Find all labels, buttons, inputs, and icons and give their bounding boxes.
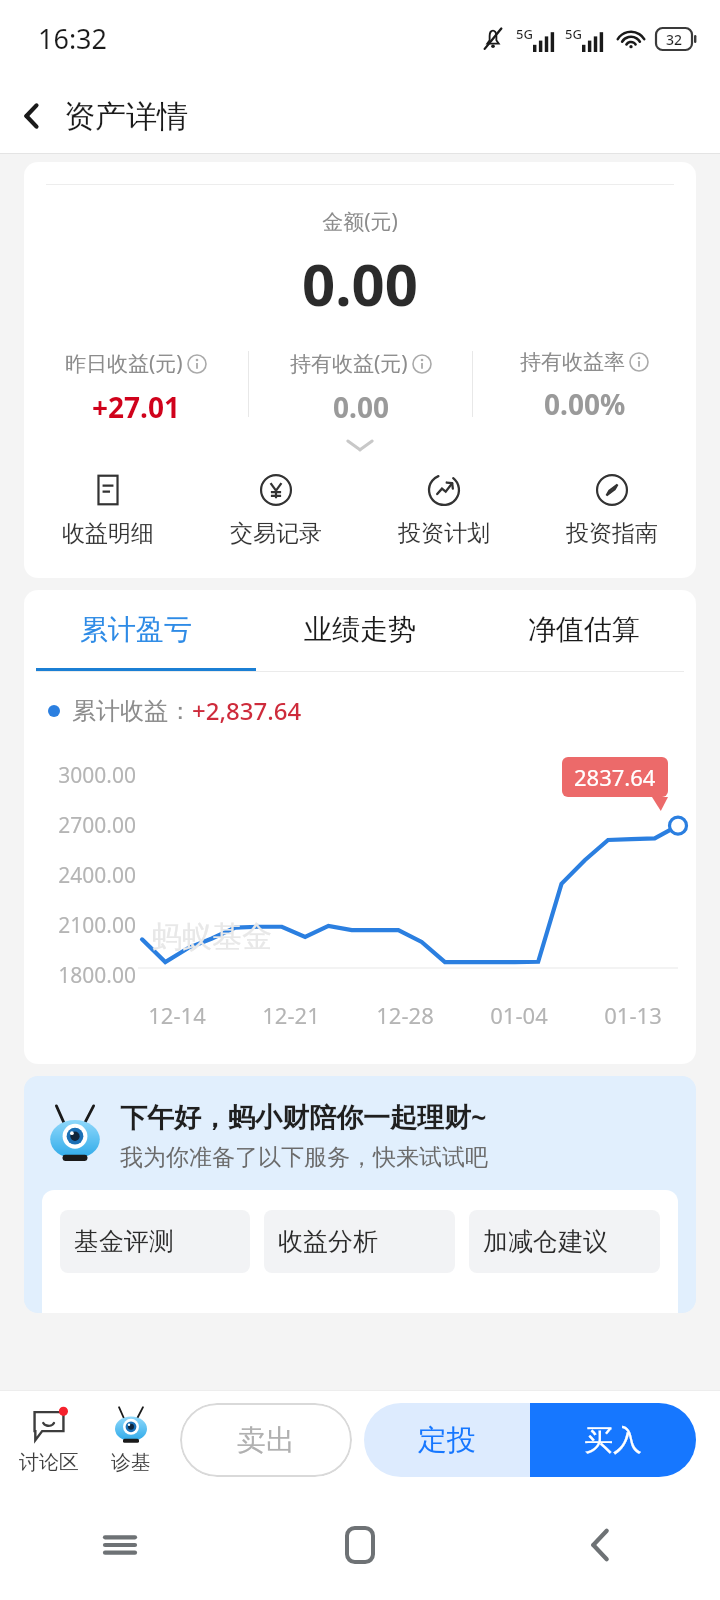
staticText: 蚂蚁基金: [152, 918, 272, 956]
staticText: 基金评测: [74, 1226, 174, 1257]
staticText: 5G: [565, 25, 582, 43]
staticText: 资产详情: [64, 97, 188, 136]
button[interactable]: 基金评测: [60, 1210, 250, 1273]
staticText: 投资指南: [566, 519, 658, 548]
staticText: 3000.00: [24, 761, 136, 790]
staticText: 16:32: [38, 20, 108, 57]
button[interactable]: Back: [480, 1490, 720, 1600]
staticText: 持有收益率: [520, 349, 625, 375]
button[interactable]: 收益明细: [24, 469, 192, 552]
button[interactable]: 净值估算: [472, 590, 696, 668]
staticText: 净值估算: [528, 612, 640, 647]
staticText: 诊基: [111, 1450, 151, 1475]
staticText: 1800.00: [24, 961, 136, 990]
staticText: 收益分析: [278, 1226, 378, 1257]
button[interactable]: Recents: [0, 1490, 240, 1600]
staticText: 我为你准备了以下服务，快来试试吧: [120, 1143, 488, 1172]
staticText: 2400.00: [24, 861, 136, 890]
button[interactable]: Expand: [24, 431, 696, 459]
staticText: 下午好，蚂小财陪你一起理财~: [120, 1098, 487, 1135]
staticText: 讨论区: [19, 1450, 79, 1475]
staticText: 持有收益(元): [290, 349, 408, 378]
staticText: 12-28: [348, 1000, 462, 1030]
staticText: 0.00: [24, 244, 696, 323]
button[interactable]: 加减仓建议: [469, 1210, 660, 1273]
button[interactable]: Back: [0, 84, 64, 148]
staticText: 2837.64: [574, 762, 656, 792]
staticText: +27.01: [92, 388, 180, 419]
button[interactable]: Home: [240, 1490, 480, 1600]
staticText: 累计盈亏: [80, 612, 192, 647]
button[interactable]: 诊基: [90, 1406, 172, 1475]
button[interactable]: 卖出: [180, 1403, 352, 1477]
staticText: 卖出: [237, 1422, 295, 1459]
staticText: 2700.00: [24, 811, 136, 840]
staticText: 2100.00: [24, 911, 136, 940]
staticText: 12-14: [120, 1000, 234, 1030]
button[interactable]: 投资指南: [528, 469, 696, 552]
button[interactable]: 定投: [364, 1403, 530, 1477]
button[interactable]: 业绩走势: [248, 590, 472, 668]
staticText: 定投: [418, 1422, 476, 1459]
button[interactable]: 持有收益(元): [249, 349, 472, 419]
staticText: 32: [666, 30, 683, 49]
button[interactable]: 累计盈亏: [24, 590, 248, 668]
button[interactable]: 昨日收益(元): [24, 349, 248, 419]
staticText: 业绩走势: [304, 612, 416, 647]
staticText: 投资计划: [398, 519, 490, 548]
staticText: 昨日收益(元): [65, 349, 183, 378]
staticText: 累计收益：: [72, 696, 192, 726]
staticText: +2,837.64: [192, 694, 302, 727]
staticText: 0.00: [333, 388, 389, 419]
staticText: 12-21: [234, 1000, 348, 1030]
button[interactable]: 持有收益率: [473, 349, 696, 419]
staticText: 交易记录: [230, 519, 322, 548]
staticText: 买入: [584, 1422, 642, 1459]
staticText: 加减仓建议: [483, 1226, 608, 1257]
button[interactable]: 交易记录: [192, 469, 360, 552]
button[interactable]: 讨论区: [8, 1406, 90, 1475]
button[interactable]: 投资计划: [360, 469, 528, 552]
staticText: 01-04: [462, 1000, 576, 1030]
button[interactable]: 收益分析: [264, 1210, 455, 1273]
staticText: 金额(元): [24, 207, 696, 236]
staticText: 收益明细: [62, 519, 154, 548]
staticText: 01-13: [576, 1000, 690, 1030]
staticText: 5G: [516, 25, 533, 43]
button[interactable]: 买入: [530, 1403, 696, 1477]
staticText: 0.00%: [544, 385, 626, 419]
